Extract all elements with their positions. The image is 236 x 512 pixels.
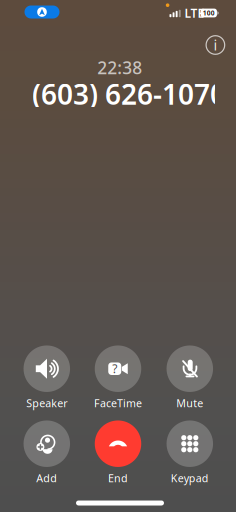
- staticText: 100: [203, 9, 215, 17]
- staticText: Add: [36, 471, 57, 485]
- staticText: Speaker: [26, 396, 67, 410]
- button[interactable]: Speaker: [12, 345, 82, 411]
- button[interactable]: Add: [12, 420, 82, 486]
- staticText: (603) 626-1070: [32, 75, 226, 113]
- staticText: FaceTime: [94, 396, 142, 410]
- staticText: 22:38: [97, 56, 142, 79]
- staticText: Keypad: [171, 471, 209, 485]
- staticText: Mute: [176, 396, 203, 410]
- staticText: End: [108, 471, 128, 485]
- staticText: LTE: [184, 5, 204, 21]
- button[interactable]: Mute: [155, 345, 225, 411]
- button[interactable]: End: [83, 420, 153, 486]
- button[interactable]: Call info: [200, 30, 230, 60]
- button[interactable]: ?: [83, 345, 153, 411]
- staticText: ?: [112, 361, 117, 377]
- staticText: i: [213, 35, 217, 54]
- button[interactable]: Keypad: [155, 420, 225, 486]
